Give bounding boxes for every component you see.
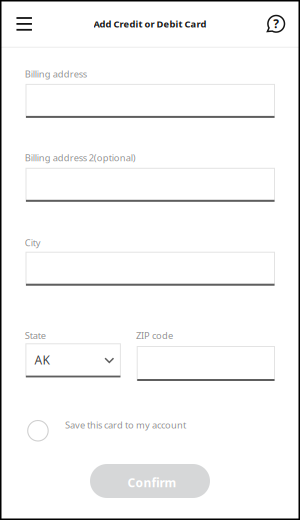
button[interactable]: Save this card to my account: [28, 419, 258, 443]
staticText: City: [25, 236, 41, 249]
staticText: Save this card to my account: [65, 419, 186, 431]
staticText: State: [25, 329, 46, 342]
button[interactable]: AK: [26, 344, 120, 378]
button[interactable]: Menu: [4, 6, 44, 42]
button[interactable]: Help: [258, 6, 294, 42]
button[interactable]: Confirm: [90, 464, 210, 498]
staticText: AK: [35, 352, 50, 368]
staticText: Billing address 2(optional): [25, 151, 136, 164]
staticText: ?: [273, 15, 279, 31]
staticText: ZIP code: [136, 329, 173, 342]
staticText: Add Credit or Debit Card: [93, 18, 206, 30]
staticText: Billing address: [25, 68, 87, 80]
staticText: Confirm: [128, 475, 177, 490]
